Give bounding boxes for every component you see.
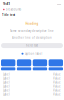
staticText: Value	[53, 73, 61, 76]
staticText: ....	[57, 1, 61, 6]
staticText: Value	[53, 89, 61, 92]
staticText: Title text	[2, 13, 15, 17]
staticText: Label	[3, 89, 10, 92]
button[interactable]	[1, 59, 15, 66]
button[interactable]	[49, 59, 63, 66]
staticText: caption label	[24, 52, 42, 55]
button[interactable]	[17, 59, 31, 66]
staticText: Some secondary descriptive line	[10, 29, 54, 33]
staticText: Value	[53, 77, 61, 80]
button[interactable]	[1, 67, 15, 70]
staticText: Label	[3, 85, 10, 88]
button[interactable]	[33, 67, 47, 70]
staticText: Another line of description	[12, 36, 52, 39]
staticText: Label	[3, 77, 10, 80]
staticText: Value	[53, 93, 61, 96]
staticText: breadcrumb	[6, 8, 22, 11]
staticText: Value	[53, 81, 61, 84]
staticText: field text	[26, 44, 38, 47]
staticText: Label	[3, 81, 10, 84]
staticText: Value	[53, 85, 61, 88]
button[interactable]	[33, 59, 47, 66]
staticText: Heading	[25, 22, 38, 25]
staticText: 9:41	[3, 1, 10, 6]
staticText: Label	[3, 93, 10, 96]
staticText: Label	[3, 73, 10, 76]
button[interactable]	[17, 67, 31, 70]
button[interactable]	[49, 67, 63, 70]
